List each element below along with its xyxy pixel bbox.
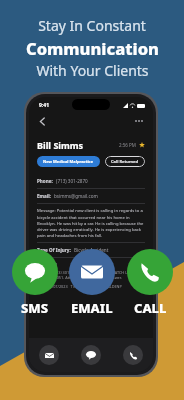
button[interactable]: Phone: bbox=[29, 174, 153, 188]
staticText: Bicycle Accident bbox=[74, 247, 109, 253]
button[interactable]: Type Of Injury: bbox=[29, 243, 153, 257]
staticText: Email: bbox=[37, 193, 51, 199]
button[interactable]: Email: bbox=[29, 189, 153, 203]
staticText: Communication bbox=[26, 37, 159, 59]
button[interactable]: EMAIL bbox=[69, 249, 115, 317]
staticText: Message: Potential new client is calling… bbox=[37, 208, 145, 238]
button[interactable]: More options bbox=[132, 117, 146, 125]
staticText: Bill Simms bbox=[37, 139, 84, 151]
staticText: New Medical Malpractice bbox=[43, 159, 94, 164]
button[interactable]: Call Returned bbox=[105, 156, 145, 167]
staticText: bsimms@gmail.com bbox=[54, 193, 98, 199]
staticText: EMAIL bbox=[71, 299, 113, 317]
staticText: Call Logs bbox=[37, 261, 57, 267]
staticText: 9:41 bbox=[39, 102, 49, 109]
button[interactable]: Email bbox=[39, 345, 59, 365]
button[interactable]: CALL bbox=[127, 249, 173, 317]
button[interactable]: Call bbox=[123, 345, 143, 365]
staticText: SMS bbox=[21, 299, 49, 317]
staticText: Call Returned bbox=[111, 159, 139, 164]
staticText: Date: 08/07/2023 Time: 10:58 AM By: ALDE… bbox=[37, 284, 122, 289]
staticText: ATTN(1): (713) 301-2870, Tried client ca… bbox=[37, 270, 145, 280]
button[interactable]: Messages bbox=[81, 345, 101, 365]
button[interactable]: SMS bbox=[12, 249, 58, 317]
staticText: Phone: bbox=[37, 178, 53, 184]
staticText: With Your Clients bbox=[36, 61, 149, 80]
staticText: Type Of Injury: bbox=[37, 247, 71, 253]
button[interactable]: Back bbox=[36, 115, 48, 127]
staticText: CALL bbox=[134, 299, 167, 317]
staticText: 2:56 PM bbox=[119, 142, 136, 148]
button[interactable]: New Medical Malpractice bbox=[37, 156, 100, 167]
staticText: (713) 301-2870 bbox=[56, 178, 88, 184]
staticText: Stay In Constant bbox=[38, 16, 146, 35]
